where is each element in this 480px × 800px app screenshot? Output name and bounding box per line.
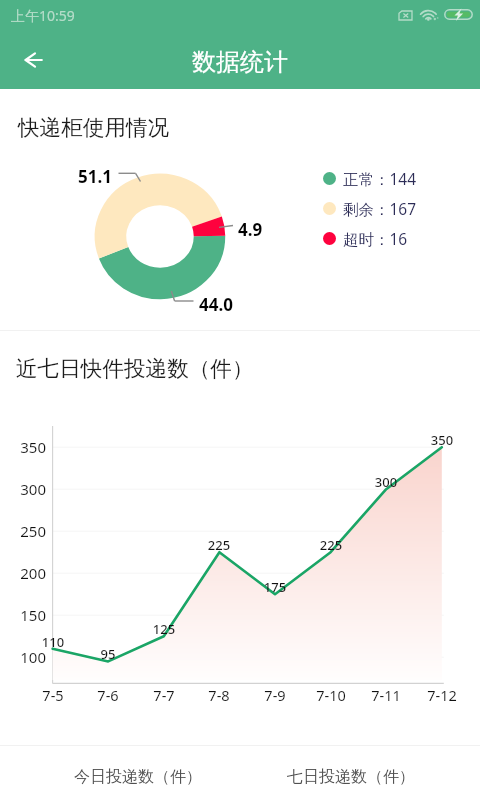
- staticText: 125: [134, 620, 194, 638]
- staticText: 7-5: [23, 685, 83, 705]
- staticText: 剩余：167: [343, 198, 417, 219]
- staticText: 7-11: [356, 685, 416, 705]
- staticText: 数据统计: [192, 47, 288, 77]
- button[interactable]: 七日投递数（件）: [244, 750, 457, 800]
- staticText: 近七日快件投递数（件）: [16, 355, 254, 382]
- staticText: 350: [6, 437, 46, 457]
- staticText: 225: [189, 536, 249, 554]
- staticText: 快递柜使用情况: [18, 114, 170, 141]
- staticText: 300: [6, 479, 46, 499]
- staticText: 44.0: [199, 293, 259, 316]
- staticText: 150: [6, 605, 46, 625]
- staticText: 七日投递数（件）: [287, 767, 415, 787]
- staticText: 300: [356, 473, 416, 491]
- staticText: 今日投递数（件）: [74, 767, 202, 787]
- staticText: 上午10:59: [11, 6, 75, 25]
- staticText: 250: [6, 521, 46, 541]
- staticText: 7-6: [78, 685, 138, 705]
- button[interactable]: Back: [9, 36, 57, 84]
- staticText: 7-7: [134, 685, 194, 705]
- staticText: 110: [23, 633, 83, 651]
- staticText: 350: [412, 431, 472, 449]
- staticText: 7-12: [412, 685, 472, 705]
- staticText: 225: [301, 536, 361, 554]
- staticText: 7-8: [189, 685, 249, 705]
- staticText: 51.1: [52, 165, 112, 188]
- staticText: 7-10: [301, 685, 361, 705]
- staticText: 超时：16: [343, 228, 408, 249]
- staticText: 175: [245, 578, 305, 596]
- staticText: 100: [6, 647, 46, 667]
- staticText: 200: [6, 563, 46, 583]
- staticText: 95: [78, 645, 138, 663]
- staticText: 4.9: [238, 218, 298, 241]
- button[interactable]: 今日投递数（件）: [32, 750, 244, 800]
- staticText: 7-9: [245, 685, 305, 705]
- staticText: 正常：144: [343, 168, 417, 189]
